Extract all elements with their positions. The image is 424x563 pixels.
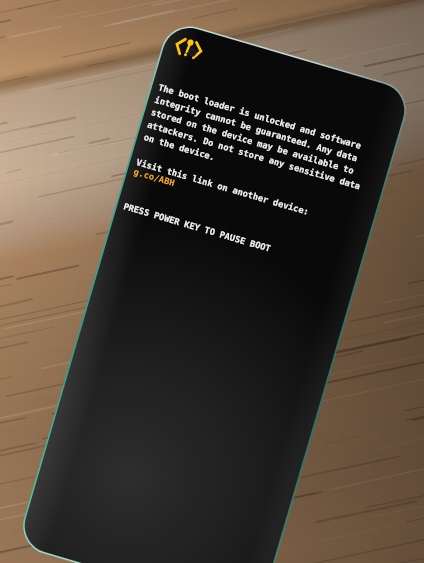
staticText: The boot loader is unlocked and software… (135, 82, 373, 229)
staticText: g.co/ABH (132, 167, 177, 188)
staticText: PRESS POWER KEY TO PAUSE BOOT (122, 176, 279, 254)
